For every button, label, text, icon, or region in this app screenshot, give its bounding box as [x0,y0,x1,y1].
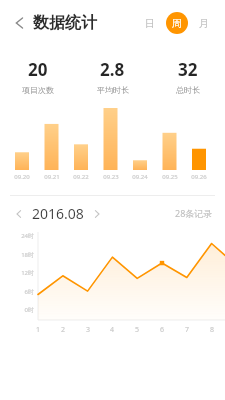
staticText: 09.22 [68,173,94,181]
button[interactable]: 20 [0,58,75,95]
button[interactable]: Next month [90,207,104,221]
staticText: 09.20 [9,173,35,181]
staticText: 18时 [8,251,34,259]
staticText: 3 [80,325,96,335]
button[interactable]: 32 [150,58,225,95]
staticText: 09.25 [157,173,183,181]
staticText: 4 [104,325,120,335]
staticText: 总时长 [176,85,200,95]
staticText: 8 [204,325,220,335]
staticText: 09.26 [186,173,212,181]
staticText: 项目次数 [22,85,54,95]
staticText: 09.21 [39,173,65,181]
staticText: 32 [178,58,198,81]
staticText: 5 [129,325,145,335]
staticText: 6 [154,325,170,335]
button[interactable]: 月 [193,12,215,34]
staticText: 周 [172,17,182,30]
staticText: 24时 [8,232,34,240]
staticText: 6时 [8,288,34,296]
button[interactable]: Previous month [12,207,26,221]
staticText: 28条记录 [175,207,213,219]
staticText: 2 [55,325,71,335]
staticText: 09.23 [98,173,124,181]
staticText: 平均时长 [97,85,129,95]
staticText: 12时 [8,269,34,277]
staticText: 数据统计 [33,13,97,33]
button[interactable]: 日 [139,12,161,34]
button[interactable]: 2.8 [75,58,150,95]
staticText: 0时 [8,306,34,314]
staticText: 日 [145,17,155,30]
button[interactable]: Back [6,9,34,37]
button[interactable]: 周 [166,12,188,34]
staticText: 2016.08 [32,204,84,223]
staticText: 20 [28,58,48,81]
staticText: 7 [179,325,195,335]
staticText: 月 [199,17,209,30]
staticText: 2.8 [100,58,125,81]
staticText: 09.24 [127,173,153,181]
staticText: 1 [30,325,46,335]
